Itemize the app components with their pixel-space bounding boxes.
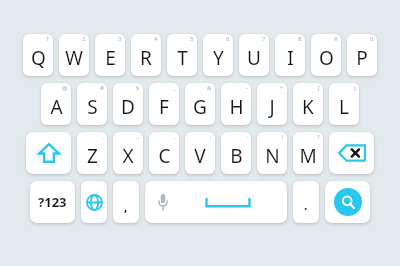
button[interactable]: 3 xyxy=(95,34,125,76)
staticText: I xyxy=(287,45,294,71)
staticText: 2 xyxy=(82,35,86,43)
button[interactable]: . xyxy=(77,132,107,174)
staticText: ? xyxy=(317,133,320,141)
button[interactable]: , xyxy=(113,181,139,223)
staticText: 1 xyxy=(46,35,50,43)
staticText: B xyxy=(230,143,243,169)
button[interactable]: ( xyxy=(293,83,323,125)
button[interactable]: 7 xyxy=(239,34,269,76)
button[interactable]: ?123 xyxy=(30,181,75,223)
button[interactable]: _ xyxy=(149,83,179,125)
staticText: 4 xyxy=(154,35,158,43)
staticText: ( xyxy=(318,84,320,92)
button[interactable]: 2 xyxy=(59,34,89,76)
staticText: M xyxy=(299,143,317,169)
button[interactable]: 0 xyxy=(347,34,377,76)
staticText: Z xyxy=(87,143,98,169)
staticText: .. xyxy=(136,133,140,141)
staticText: G xyxy=(193,94,207,120)
staticText: R xyxy=(140,45,152,71)
button[interactable]: Shift xyxy=(26,132,71,174)
button[interactable]: .. xyxy=(113,132,143,174)
button[interactable]: $ xyxy=(113,83,143,125)
staticText: # xyxy=(100,84,104,92)
staticText: & xyxy=(207,84,212,92)
button[interactable]: + xyxy=(257,83,287,125)
staticText: 6 xyxy=(226,35,230,43)
staticText: 8 xyxy=(298,35,302,43)
staticText: . xyxy=(102,133,104,141)
staticText: P xyxy=(356,45,368,71)
button[interactable]: ? xyxy=(293,132,323,174)
staticText: 5 xyxy=(190,35,194,43)
button[interactable]: # xyxy=(77,83,107,125)
staticText: X xyxy=(122,143,134,169)
staticText: S xyxy=(87,94,98,120)
staticText: L xyxy=(339,94,349,120)
staticText: : xyxy=(210,133,212,141)
staticText: 9 xyxy=(334,35,338,43)
staticText: H xyxy=(229,94,244,120)
staticText: - xyxy=(246,84,248,92)
button[interactable]: 9 xyxy=(311,34,341,76)
staticText: ?123 xyxy=(38,193,67,211)
button[interactable]: 8 xyxy=(275,34,305,76)
button[interactable]: ! xyxy=(257,132,287,174)
staticText: $ xyxy=(136,84,140,92)
staticText: O xyxy=(319,45,334,71)
staticText: T xyxy=(177,45,188,71)
staticText: Y xyxy=(213,45,224,71)
staticText: V xyxy=(194,143,206,169)
button[interactable]: 6 xyxy=(203,34,233,76)
staticText: _ xyxy=(173,84,176,92)
button[interactable]: Change language xyxy=(81,181,107,223)
staticText: 0 xyxy=(370,35,374,43)
button[interactable]: ) xyxy=(329,83,359,125)
staticText: 7 xyxy=(262,35,266,43)
staticText: . xyxy=(174,133,176,141)
staticText: J xyxy=(269,94,275,120)
button[interactable]: . xyxy=(293,181,319,223)
button[interactable]: : xyxy=(185,132,215,174)
staticText: C xyxy=(158,143,171,169)
button[interactable]: - xyxy=(221,83,251,125)
button[interactable]: : xyxy=(221,132,251,174)
button[interactable]: 1 xyxy=(23,34,53,76)
staticText: , xyxy=(124,198,128,214)
staticText: E xyxy=(105,45,116,71)
staticText: D xyxy=(121,94,135,120)
staticText: . xyxy=(304,197,308,213)
button[interactable]: 5 xyxy=(167,34,197,76)
staticText: ! xyxy=(282,133,284,141)
button[interactable]: . xyxy=(149,132,179,174)
staticText: @ xyxy=(62,84,68,92)
staticText: A xyxy=(50,94,63,120)
staticText: Q xyxy=(31,45,46,71)
staticText: ) xyxy=(354,84,356,92)
staticText: W xyxy=(65,45,83,71)
staticText: 3 xyxy=(118,35,122,43)
staticText: : xyxy=(246,133,248,141)
staticText: + xyxy=(280,84,284,92)
staticText: N xyxy=(265,143,280,169)
staticText: F xyxy=(159,94,169,120)
button[interactable]: & xyxy=(185,83,215,125)
staticText: K xyxy=(302,94,314,120)
staticText: U xyxy=(247,45,261,71)
button[interactable]: 4 xyxy=(131,34,161,76)
button[interactable]: Search xyxy=(325,181,370,223)
button[interactable]: Backspace xyxy=(329,132,374,174)
button[interactable]: @ xyxy=(41,83,71,125)
button[interactable]: Space xyxy=(145,181,287,223)
